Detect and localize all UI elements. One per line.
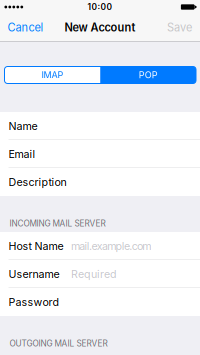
staticText: Password: [8, 295, 59, 308]
staticText: Required: [71, 267, 117, 280]
staticText: POP: [139, 69, 158, 80]
button[interactable]: Save: [161, 14, 200, 41]
staticText: Description: [8, 175, 66, 188]
staticText: Name: [8, 119, 37, 132]
button[interactable]: Description: [0, 168, 200, 196]
button[interactable]: POP: [100, 66, 196, 83]
button[interactable]: Host Name: [0, 232, 200, 260]
button[interactable]: Name: [0, 112, 200, 140]
button[interactable]: Email: [0, 140, 200, 168]
button[interactable]: Password: [0, 288, 200, 316]
staticText: Cancel: [7, 21, 43, 34]
staticText: Host Name: [8, 239, 63, 252]
staticText: Save: [167, 21, 192, 34]
staticText: New Account: [64, 21, 135, 34]
staticText: OUTGOING MAIL SERVER: [9, 338, 107, 348]
button[interactable]: IMAP: [4, 66, 100, 83]
button[interactable]: Username: [0, 260, 200, 288]
staticText: mail.example.com: [71, 239, 151, 252]
staticText: IMAP: [41, 69, 63, 80]
staticText: 10:00: [87, 2, 112, 12]
staticText: INCOMING MAIL SERVER: [9, 218, 105, 228]
button[interactable]: Cancel: [0, 14, 49, 41]
staticText: Email: [8, 147, 35, 160]
staticText: Username: [8, 267, 59, 280]
